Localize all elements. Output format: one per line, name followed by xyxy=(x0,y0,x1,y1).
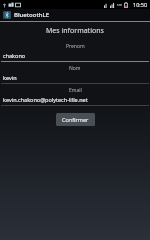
button[interactable]: BluetoothLE app icon xyxy=(0,9,150,21)
staticText: 10:50 xyxy=(133,1,148,8)
staticText: sm xyxy=(117,2,122,7)
staticText: Mes informations xyxy=(46,26,104,36)
staticText: kevin xyxy=(3,74,17,81)
button[interactable]: Nom xyxy=(0,65,150,87)
staticText: kevin.chakono@polytech-lille.net xyxy=(3,96,88,103)
button[interactable]: Prenom xyxy=(0,43,150,65)
staticText: Prenom xyxy=(66,43,85,50)
staticText: chakono xyxy=(3,52,26,59)
staticText: Nom xyxy=(69,65,81,72)
staticText: Confirmer xyxy=(62,116,89,123)
button[interactable]: Confirmer xyxy=(56,113,95,126)
staticText: Email xyxy=(69,87,82,94)
other: BluetoothLE app icon xyxy=(3,11,11,19)
button[interactable]: Email xyxy=(0,87,150,109)
staticText: BluetoothLE xyxy=(14,11,49,19)
